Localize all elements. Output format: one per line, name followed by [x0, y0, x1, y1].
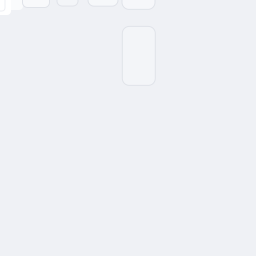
button[interactable]: Albums	[122, 0, 155, 9]
button[interactable]: Shared	[57, 0, 78, 6]
button[interactable]: All	[0, 0, 11, 15]
button[interactable]: Recents	[22, 0, 49, 7]
button[interactable]: Card	[122, 26, 155, 85]
button[interactable]: Favorites	[88, 0, 118, 6]
